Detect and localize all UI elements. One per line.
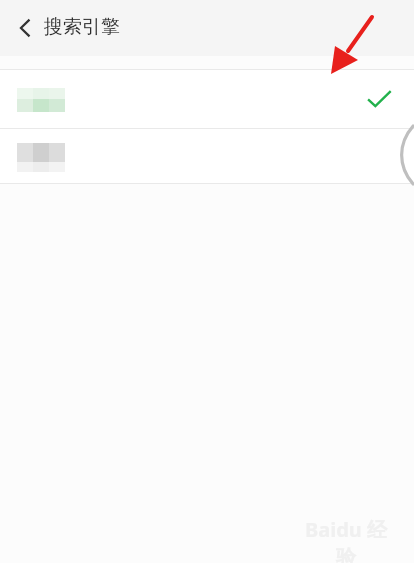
staticText: 搜索引擎	[44, 15, 120, 39]
button[interactable]: Search engine option 1, selected	[0, 70, 414, 128]
button[interactable]: Back	[4, 6, 48, 50]
staticText: Baidu 经验	[296, 516, 396, 563]
button[interactable]: Search engine option 2	[0, 129, 414, 183]
